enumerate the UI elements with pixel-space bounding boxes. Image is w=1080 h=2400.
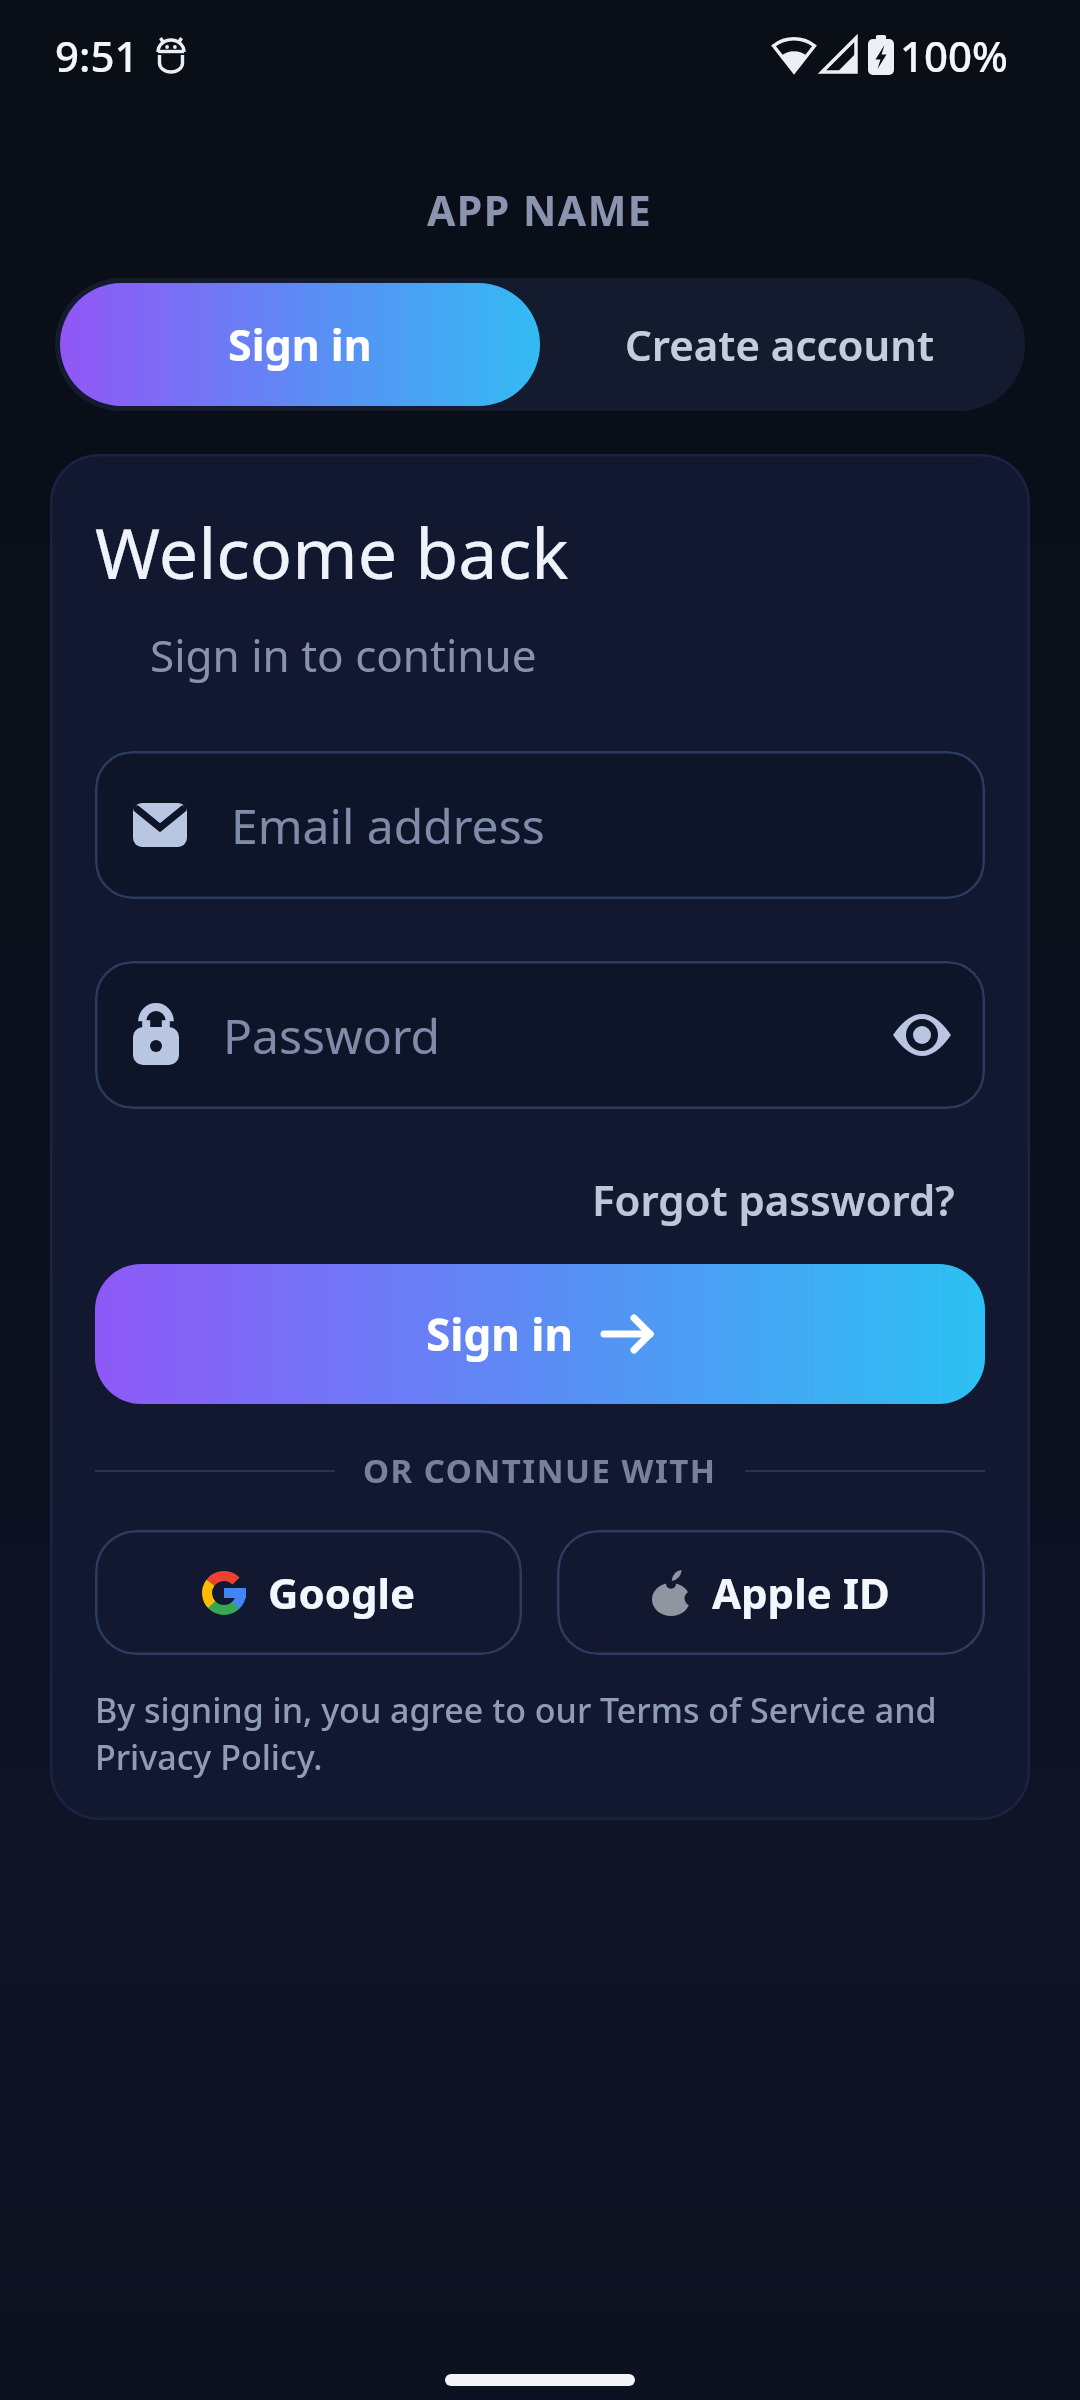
button[interactable]: Apple ID <box>557 1530 985 1655</box>
staticText: Google <box>268 1564 416 1621</box>
staticText: Apple ID <box>712 1564 890 1621</box>
staticText: Create account <box>625 316 935 373</box>
staticText: 100% <box>900 27 1008 84</box>
staticText: Sign in <box>426 1304 574 1364</box>
staticText: Email address <box>231 793 545 858</box>
staticText: Forgot password? <box>592 1171 955 1228</box>
button[interactable]: Sign in <box>95 1264 985 1404</box>
staticText: Sign in to continue <box>150 625 537 685</box>
staticText: By signing in, you agree to our Terms of… <box>95 1687 937 1780</box>
staticText: APP NAME <box>427 182 653 238</box>
button[interactable]: Sign in <box>60 283 540 406</box>
button[interactable]: Password <box>95 961 985 1109</box>
staticText: 9:51 <box>55 27 139 84</box>
button[interactable]: Create account <box>540 283 1020 406</box>
button[interactable]: Google <box>95 1530 522 1655</box>
staticText: Sign in <box>228 315 372 374</box>
button[interactable]: Forgot password? <box>592 1171 955 1228</box>
staticText: Welcome back <box>95 504 569 599</box>
staticText: OR CONTINUE WITH <box>363 1448 717 1493</box>
button[interactable] <box>893 1015 951 1055</box>
staticText: Password <box>223 1003 441 1068</box>
button[interactable]: Email address <box>95 751 985 899</box>
